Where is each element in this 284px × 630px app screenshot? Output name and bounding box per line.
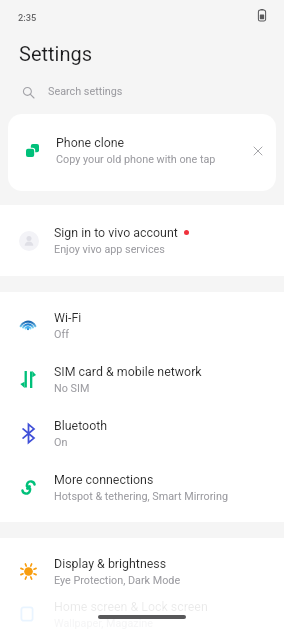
button[interactable]: Wi-Fi <box>0 298 284 352</box>
staticText: Bluetooth <box>54 418 108 433</box>
staticText: Wi-Fi <box>54 310 82 325</box>
staticText: More connections <box>54 472 154 487</box>
staticText: Eye Protection, Dark Mode <box>54 574 181 587</box>
staticText: Search settings <box>48 85 123 98</box>
button[interactable]: More connections <box>0 460 284 514</box>
staticText: Phone clone <box>56 135 125 150</box>
button[interactable]: Home screen & Lock screen <box>0 598 284 630</box>
button[interactable]: Bluetooth <box>0 406 284 460</box>
staticText: Enjoy vivo app services <box>54 243 165 256</box>
staticText: Sign in to vivo account <box>54 225 178 240</box>
staticText: Wallpaper, Magazine <box>54 617 153 630</box>
staticText: Copy your old phone with one tap <box>56 153 216 166</box>
button[interactable]: Display & brightness <box>0 544 284 598</box>
button[interactable]: Search settings <box>0 74 284 108</box>
staticText: On <box>54 436 68 449</box>
button[interactable]: Dismiss <box>247 140 269 162</box>
staticText: Home screen & Lock screen <box>54 599 208 614</box>
staticText: Display & brightness <box>54 556 167 571</box>
staticText: Settings <box>19 42 93 65</box>
button[interactable]: SIM card & mobile network <box>0 352 284 406</box>
button[interactable]: Phone clone <box>8 114 276 191</box>
button[interactable]: Sign in to vivo account <box>0 205 284 276</box>
staticText: 2:35 <box>18 12 37 23</box>
staticText: No SIM <box>54 382 90 395</box>
staticText: SIM card & mobile network <box>54 364 202 379</box>
staticText: Off <box>54 328 69 341</box>
staticText: Hotspot & tethering, Smart Mirroring <box>54 490 228 503</box>
